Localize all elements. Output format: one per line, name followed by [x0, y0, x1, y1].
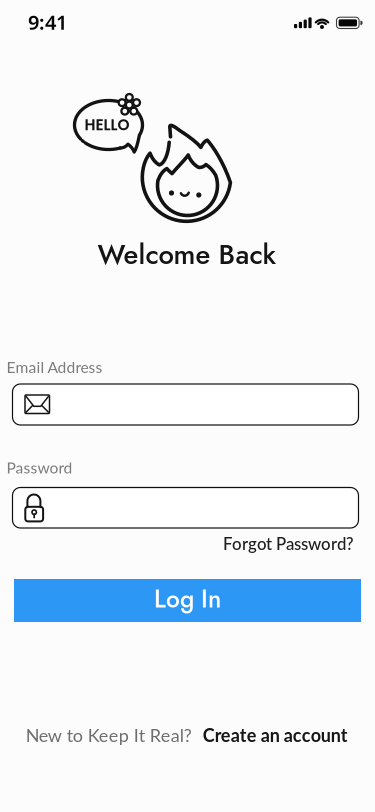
- staticText: Password: [6, 458, 72, 477]
- staticText: HELLO: [84, 114, 129, 136]
- staticText: Forgot Password?: [223, 533, 354, 554]
- button[interactable]: Create an account: [203, 724, 348, 746]
- button[interactable]: Forgot Password?: [223, 533, 354, 554]
- staticText: New to Keep It Real?: [26, 724, 192, 746]
- staticText: Log In: [154, 581, 221, 617]
- staticText: Welcome Back: [97, 235, 276, 274]
- button[interactable]: Log In: [14, 579, 361, 622]
- button[interactable]: Password: [12, 487, 358, 528]
- button[interactable]: Email Address: [12, 384, 358, 425]
- staticText: Create an account: [203, 724, 348, 746]
- staticText: Email Address: [6, 357, 102, 376]
- staticText: 9:41: [28, 9, 67, 35]
